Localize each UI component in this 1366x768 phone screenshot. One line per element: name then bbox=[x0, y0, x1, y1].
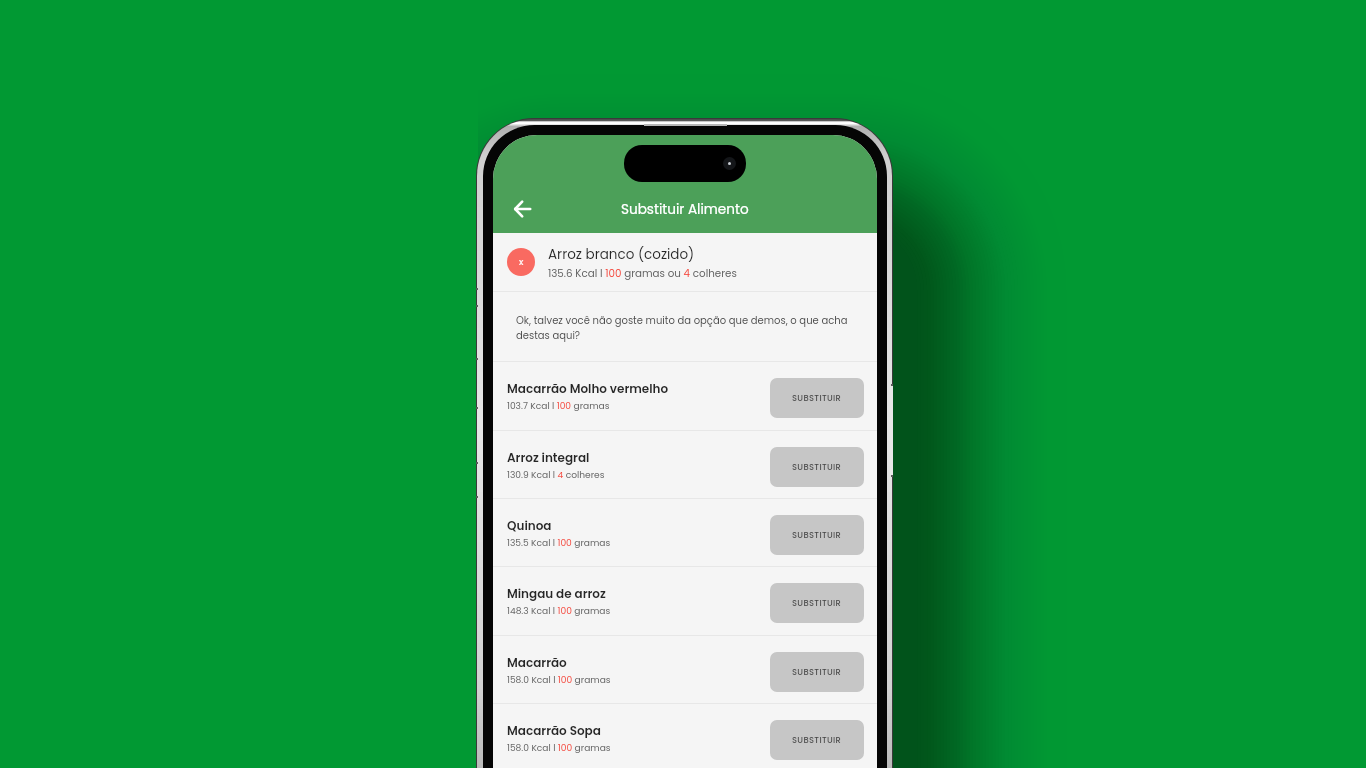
button[interactable]: x bbox=[493, 233, 877, 291]
staticText: SUBSTITUIR bbox=[792, 392, 842, 404]
staticText: 103.7 Kcal l 100 gramas bbox=[507, 399, 610, 412]
staticText: SUBSTITUIR bbox=[792, 461, 842, 473]
staticText: Arroz integral bbox=[507, 449, 590, 466]
staticText: Substituir Alimento bbox=[621, 200, 749, 219]
staticText: Macarrão Molho vermelho bbox=[507, 380, 669, 397]
button[interactable]: SUBSTITUIR bbox=[770, 583, 864, 623]
staticText: Macarrão bbox=[507, 654, 567, 671]
staticText: SUBSTITUIR bbox=[792, 529, 842, 541]
button[interactable]: Voltar bbox=[503, 190, 541, 228]
staticText: Ok, talvez você não goste muito da opção… bbox=[516, 313, 857, 343]
button[interactable]: SUBSTITUIR bbox=[770, 720, 864, 760]
staticText: 158.0 Kcal l 100 gramas bbox=[507, 741, 611, 754]
button[interactable]: Macarrão Sopa bbox=[493, 704, 877, 768]
button[interactable]: Macarrão bbox=[493, 636, 877, 703]
staticText: 130.9 Kcal l 4 colheres bbox=[507, 468, 605, 481]
staticText: SUBSTITUIR bbox=[792, 597, 842, 609]
staticText: 135.5 Kcal l 100 gramas bbox=[507, 536, 611, 549]
button[interactable]: Arroz integral bbox=[493, 431, 877, 498]
button[interactable]: SUBSTITUIR bbox=[770, 378, 864, 418]
staticText: 158.0 Kcal l 100 gramas bbox=[507, 673, 611, 686]
staticText: Quinoa bbox=[507, 517, 552, 534]
button[interactable]: SUBSTITUIR bbox=[770, 652, 864, 692]
staticText: x bbox=[519, 256, 524, 269]
staticText: SUBSTITUIR bbox=[792, 734, 842, 746]
button[interactable]: SUBSTITUIR bbox=[770, 515, 864, 555]
button[interactable]: Mingau de arroz bbox=[493, 567, 877, 635]
staticText: Mingau de arroz bbox=[507, 585, 606, 602]
staticText: Macarrão Sopa bbox=[507, 722, 601, 739]
staticText: Arroz branco (cozido) bbox=[548, 245, 695, 264]
button[interactable]: SUBSTITUIR bbox=[770, 447, 864, 487]
staticText: 148.3 Kcal l 100 gramas bbox=[507, 604, 611, 617]
staticText: SUBSTITUIR bbox=[792, 666, 842, 678]
button[interactable]: Macarrão Molho vermelho bbox=[493, 362, 877, 430]
button[interactable]: Quinoa bbox=[493, 499, 877, 566]
staticText: 135.6 Kcal l 100 gramas ou 4 colheres bbox=[548, 266, 737, 280]
